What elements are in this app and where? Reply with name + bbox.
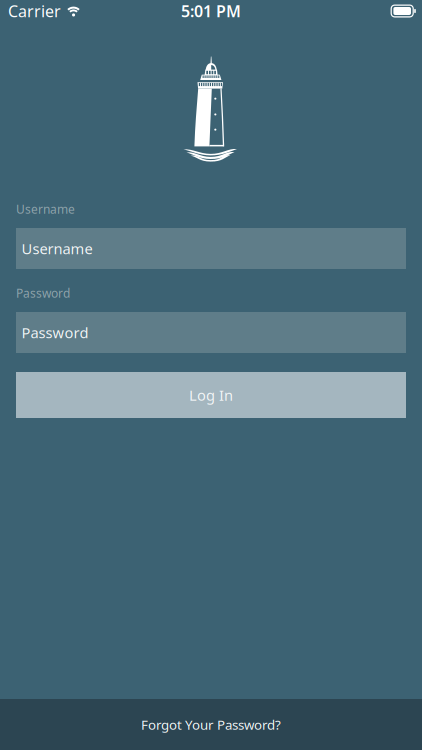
- staticText: Log In: [189, 385, 233, 405]
- staticText: Username: [16, 201, 75, 217]
- staticText: Username: [22, 239, 93, 258]
- button[interactable]: Forgot Your Password?: [0, 699, 422, 750]
- staticText: Password: [22, 323, 89, 342]
- staticText: 5:01 PM: [181, 0, 241, 22]
- staticText: Carrier: [8, 0, 61, 22]
- button[interactable]: Username: [16, 228, 406, 269]
- button[interactable]: Password: [16, 312, 406, 353]
- staticText: Password: [16, 285, 70, 301]
- staticText: Forgot Your Password?: [141, 716, 281, 733]
- button[interactable]: Log In: [16, 372, 406, 418]
